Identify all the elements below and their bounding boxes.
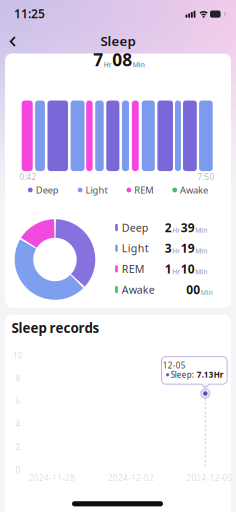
staticText: Hr (104, 60, 112, 69)
staticText: 2024-12-05 (186, 473, 232, 483)
staticText: 00 (186, 282, 200, 297)
staticText: 6 (15, 396, 20, 406)
staticText: Light (85, 184, 107, 196)
staticText: Min (201, 288, 213, 297)
staticText: Hr (172, 246, 180, 255)
staticText: Min (195, 226, 207, 235)
staticText: Deep (36, 184, 59, 196)
staticText: Deep (122, 220, 149, 235)
staticText: Hr (172, 267, 180, 276)
staticText: Min (195, 267, 207, 276)
staticText: Light (122, 241, 149, 255)
staticText: 0 (15, 464, 20, 475)
staticText: 8 (15, 373, 20, 384)
staticText: 2024-12-02 (108, 473, 154, 483)
staticText: Sleep: (171, 369, 194, 380)
staticText: 2024-11-28 (29, 473, 75, 483)
staticText: Awake (122, 282, 155, 297)
staticText: Min (195, 246, 207, 255)
staticText: 08 (112, 48, 132, 71)
staticText: Min (133, 60, 145, 69)
staticText: 7:50 (197, 172, 214, 182)
staticText: Awake (180, 184, 208, 196)
staticText: 39 (181, 219, 195, 235)
staticText: 10 (13, 350, 23, 361)
staticText: 10 (181, 261, 195, 277)
staticText: REM (134, 184, 153, 196)
staticText: 2 (15, 441, 20, 452)
staticText: Sleep (100, 32, 135, 50)
staticText: 7 (93, 48, 103, 71)
staticText: 19 (181, 240, 195, 256)
staticText: 12-05 (163, 360, 186, 371)
staticText: Hr (172, 226, 180, 235)
staticText: REM (122, 262, 145, 276)
staticText: 2 (165, 219, 172, 235)
staticText: 4 (15, 419, 20, 429)
staticText: Sleep records (11, 319, 99, 337)
staticText: 0:42 (19, 172, 36, 182)
staticText: 3 (165, 240, 172, 256)
staticText: 1 (165, 261, 172, 277)
staticText: 7.13Hr (197, 369, 224, 380)
button[interactable]: Back (0, 0, 236, 512)
staticText: 11:25 (14, 5, 45, 21)
